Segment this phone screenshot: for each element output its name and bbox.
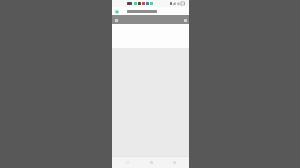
button[interactable]: Menu — [114, 18, 118, 22]
button[interactable]: Home — [143, 157, 159, 168]
other: Site icon — [114, 9, 119, 14]
button[interactable]: Site icon — [112, 7, 189, 15]
button[interactable]: Recent apps — [166, 157, 182, 168]
button[interactable]: Search — [183, 18, 187, 22]
